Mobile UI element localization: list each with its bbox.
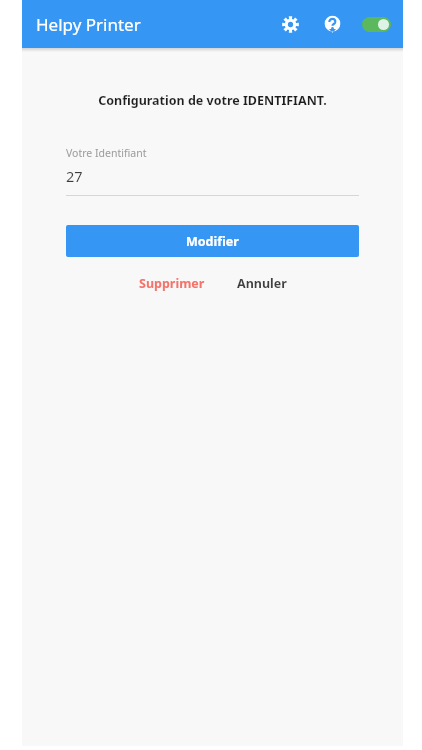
button[interactable]: Power toggle <box>355 7 397 41</box>
button[interactable]: Modifier <box>66 225 359 257</box>
staticText: Modifier <box>186 233 239 250</box>
staticText: 27 <box>66 166 83 186</box>
button[interactable]: 27 <box>66 166 359 186</box>
button[interactable]: Supprimer <box>135 272 209 295</box>
staticText: Supprimer <box>139 275 205 292</box>
staticText: Helpy Printer <box>36 13 141 36</box>
button[interactable]: Help <box>315 7 349 41</box>
button[interactable]: Annuler <box>233 272 291 295</box>
button[interactable]: Settings <box>273 7 307 41</box>
staticText: Configuration de votre IDENTIFIANT. <box>22 92 403 109</box>
staticText: Votre Identifiant <box>66 146 147 160</box>
staticText: Annuler <box>237 275 287 292</box>
